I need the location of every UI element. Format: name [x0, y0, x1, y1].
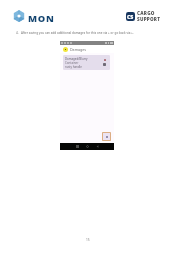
button[interactable]: Back: [96, 145, 99, 148]
button[interactable]: Damaged/Blurry: [63, 55, 110, 70]
button[interactable]: Home: [86, 145, 89, 148]
staticText: CS: [127, 13, 134, 20]
button[interactable]: Add damage: [103, 133, 110, 140]
staticText: CARGO: [137, 10, 155, 16]
button[interactable]: Damages: [60, 45, 114, 53]
staticText: rusty handle: [65, 65, 82, 69]
staticText: SUPPORT: [137, 16, 161, 22]
staticText: Damages: [70, 47, 86, 52]
staticText: Container: [65, 61, 79, 65]
staticText: 4. After saving you can add additional d…: [16, 31, 134, 35]
staticText: MON: [28, 12, 55, 25]
staticText: 15: [86, 238, 90, 242]
staticText: Damaged/Blurry: [65, 57, 88, 61]
